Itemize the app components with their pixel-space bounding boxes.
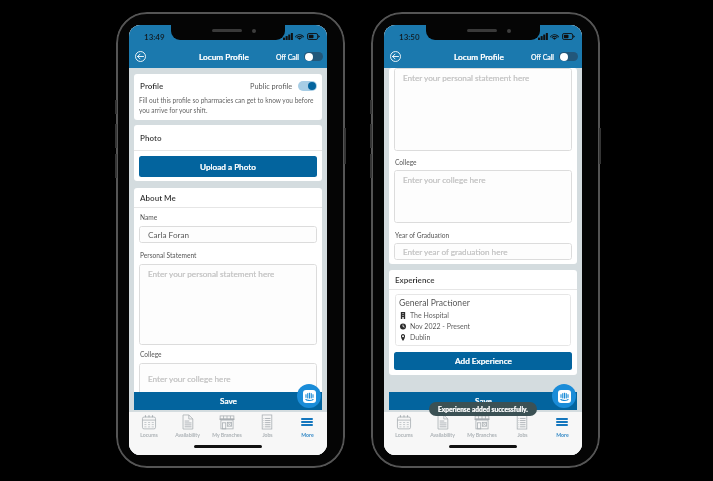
staticText: Enter your personal statement here: [403, 73, 530, 83]
button[interactable]: Open support chat: [297, 384, 321, 408]
staticText: Enter your personal statement here: [148, 269, 275, 279]
button[interactable]: Enter your personal statement here: [139, 264, 317, 345]
button[interactable]: Enter your college here: [394, 170, 572, 223]
staticText: Enter year of graduation here: [403, 247, 508, 257]
staticText: Carla Foran: [148, 230, 190, 240]
staticText: The Hospital: [410, 311, 449, 319]
staticText: Locum Profile: [199, 52, 249, 62]
button[interactable]: Jobs: [247, 412, 287, 439]
staticText: More: [301, 432, 314, 438]
staticText: Save: [220, 396, 237, 406]
button[interactable]: Availability: [423, 412, 462, 439]
button[interactable]: Off Call: [274, 50, 325, 63]
staticText: Off Call: [531, 53, 554, 61]
button[interactable]: My Branches: [207, 412, 247, 439]
staticText: Locums: [395, 432, 413, 438]
staticText: Year of Graduation: [395, 231, 450, 239]
staticText: Dublin: [410, 333, 431, 341]
staticText: Personal Statement: [140, 251, 197, 259]
button[interactable]: Save: [389, 392, 577, 410]
button[interactable]: Off Call: [529, 50, 580, 63]
button[interactable]: Public profile: [250, 81, 317, 91]
staticText: Photo: [140, 133, 162, 143]
staticText: College: [395, 158, 417, 166]
staticText: About Me: [140, 193, 176, 203]
staticText: General Practioner: [399, 298, 470, 308]
staticText: Save: [475, 396, 492, 406]
button[interactable]: Back: [132, 48, 149, 65]
button[interactable]: More: [542, 412, 582, 439]
staticText: Enter your college here: [403, 175, 486, 185]
staticText: Add Experience: [455, 356, 512, 366]
staticText: Profile: [140, 81, 164, 91]
staticText: 13:50: [399, 32, 420, 42]
staticText: Availability: [430, 432, 455, 438]
button[interactable]: General Practioner: [395, 294, 571, 346]
button[interactable]: Carla Foran: [139, 226, 317, 243]
button[interactable]: Upload a Photo: [139, 156, 317, 177]
staticText: 13:49: [144, 32, 165, 42]
button[interactable]: My Branches: [462, 412, 502, 439]
button[interactable]: Locums: [384, 412, 423, 439]
staticText: Name: [140, 213, 158, 221]
staticText: Locum Profile: [454, 52, 504, 62]
button[interactable]: More: [287, 412, 327, 439]
staticText: My Branches: [212, 432, 242, 438]
staticText: Locums: [140, 432, 158, 438]
button[interactable]: Open support chat: [552, 384, 576, 408]
staticText: My Branches: [467, 432, 497, 438]
staticText: Availability: [175, 432, 200, 438]
button[interactable]: Enter your personal statement here: [394, 68, 572, 151]
staticText: Experience: [395, 275, 435, 285]
staticText: Jobs: [517, 432, 528, 438]
staticText: More: [556, 432, 569, 438]
button[interactable]: Locums: [129, 412, 168, 439]
button[interactable]: Save: [134, 392, 322, 410]
staticText: Upload a Photo: [200, 162, 256, 172]
staticText: College: [140, 350, 162, 358]
button[interactable]: Enter your college here: [139, 363, 317, 395]
staticText: Enter your college here: [148, 374, 231, 384]
staticText: Off Call: [276, 53, 299, 61]
button[interactable]: Enter year of graduation here: [394, 243, 572, 260]
button[interactable]: Availability: [168, 412, 207, 439]
staticText: Public profile: [250, 82, 293, 91]
staticText: Nov 2022 - Present: [410, 322, 471, 330]
staticText: Experiense added successfully.: [438, 405, 528, 413]
staticText: Jobs: [262, 432, 273, 438]
button[interactable]: Add Experience: [394, 352, 572, 370]
button[interactable]: Back: [387, 48, 404, 65]
button[interactable]: Jobs: [502, 412, 542, 439]
staticText: Fill out this profile so pharmacies can …: [139, 97, 321, 114]
